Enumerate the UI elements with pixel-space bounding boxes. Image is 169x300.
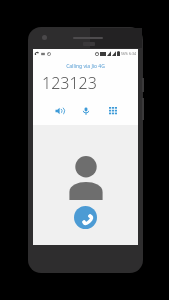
button[interactable]: End call	[74, 206, 97, 229]
button[interactable]: Dialpad	[106, 104, 120, 118]
staticText: 6:34	[129, 51, 136, 56]
staticText: 56%	[121, 51, 128, 56]
staticText: Calling via Jio 4G	[33, 63, 138, 70]
staticText: 123123	[42, 72, 138, 94]
button[interactable]: Mute microphone	[79, 104, 93, 118]
button[interactable]: Speaker	[52, 104, 66, 118]
